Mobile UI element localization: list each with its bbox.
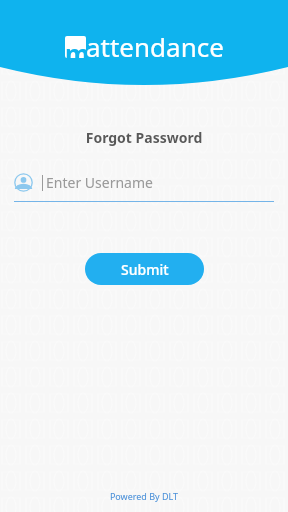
button[interactable]: Submit: [85, 253, 204, 285]
button[interactable]: Username: [14, 173, 274, 202]
staticText: Enter Username: [46, 173, 153, 192]
button[interactable]: Powered By DLT: [0, 490, 288, 512]
staticText: m: [65, 36, 86, 58]
staticText: Forgot Password: [0, 128, 288, 147]
staticText: attendance: [86, 29, 224, 64]
other: Username: [14, 173, 33, 192]
staticText: Submit: [121, 260, 169, 279]
